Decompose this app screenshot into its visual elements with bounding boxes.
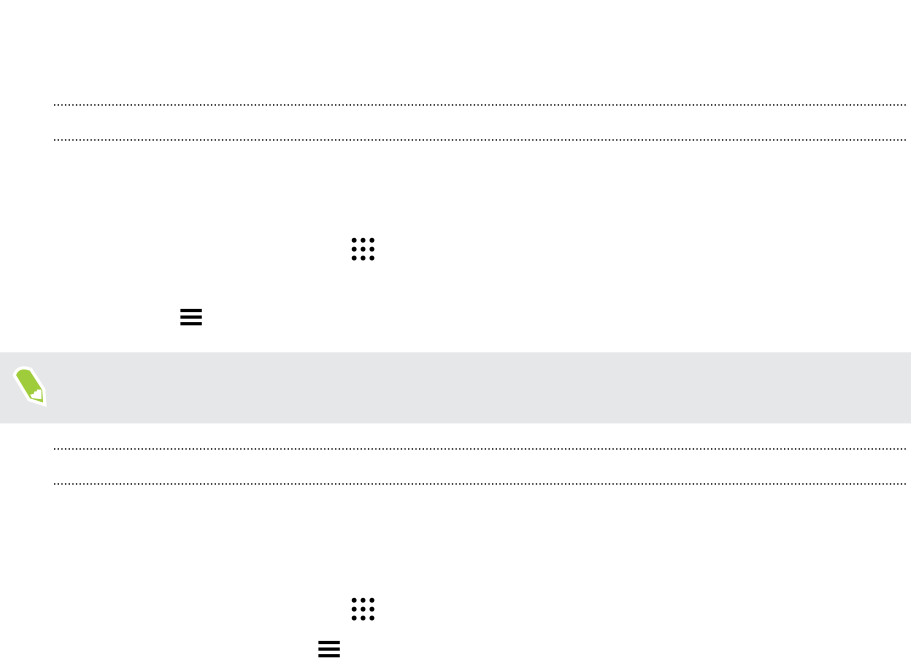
button[interactable]: Apps (352, 238, 374, 260)
button[interactable]: Menu (180, 309, 202, 325)
button[interactable]: Apps (352, 598, 374, 620)
button[interactable]: New note (14, 366, 46, 407)
button[interactable]: Menu (318, 641, 340, 657)
